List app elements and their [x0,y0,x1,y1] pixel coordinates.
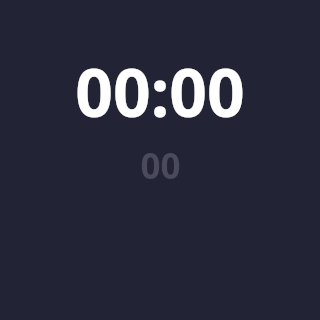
button[interactable]: 00:00 [0,0,320,320]
staticText: 00 [140,142,181,190]
staticText: 00:00 [75,46,245,136]
